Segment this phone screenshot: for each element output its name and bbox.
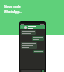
- button[interactable]: [32, 36, 44, 41]
- staticText: WhatsApp...: [4, 10, 22, 14]
- staticText: Novo code: [4, 5, 21, 9]
- button[interactable]: [33, 50, 44, 53]
- button[interactable]: Back: [20, 25, 45, 29]
- button[interactable]: [21, 30, 36, 35]
- button[interactable]: [21, 42, 37, 49]
